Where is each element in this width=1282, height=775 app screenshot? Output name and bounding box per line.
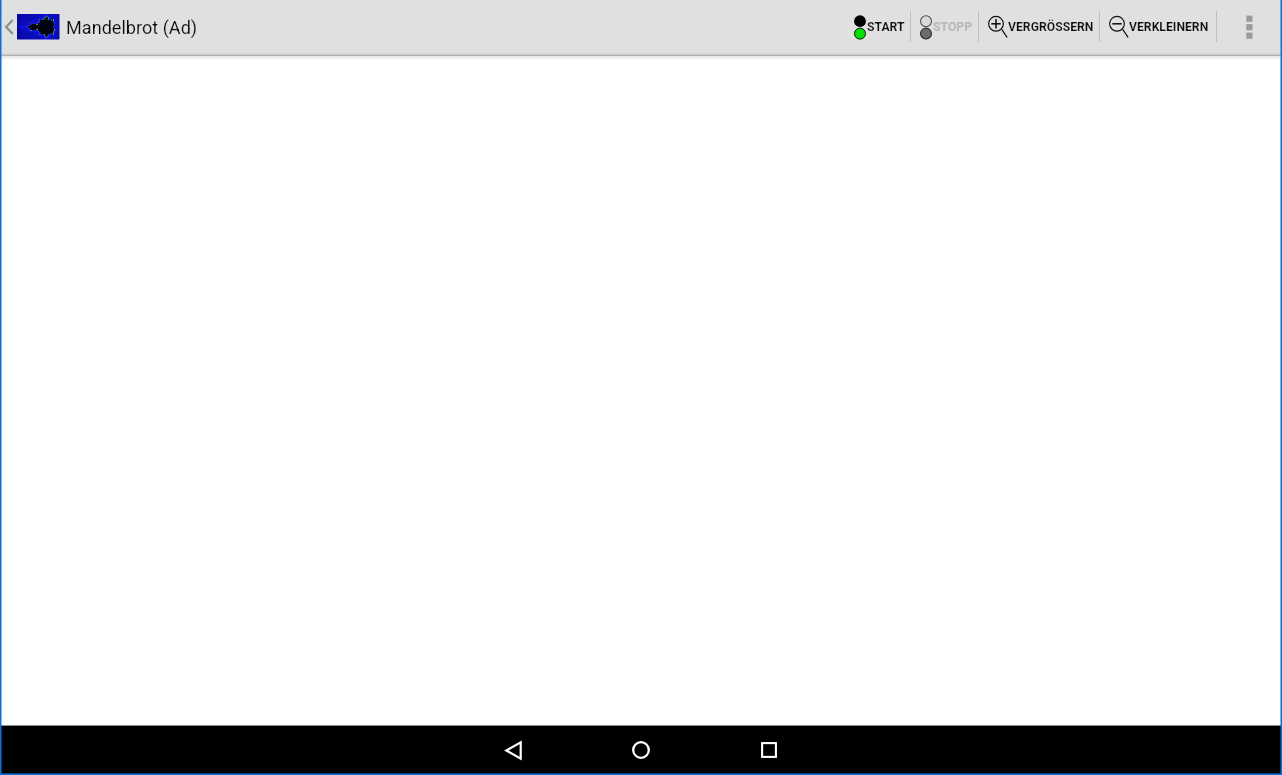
staticText: STOPP bbox=[933, 20, 973, 34]
button[interactable]: More options bbox=[1217, 0, 1281, 54]
button[interactable]: Recents bbox=[745, 726, 793, 774]
button[interactable]: VERGRÖSSERN bbox=[979, 0, 1099, 54]
button[interactable]: STOPP bbox=[911, 0, 978, 54]
button[interactable]: Mandelbrot (Ad) bbox=[0, 0, 198, 54]
button[interactable]: START bbox=[849, 0, 909, 54]
button[interactable]: VERKLEINERN bbox=[1100, 0, 1217, 54]
button[interactable]: Home bbox=[617, 726, 665, 774]
staticText: VERGRÖSSERN bbox=[1008, 20, 1094, 34]
button[interactable]: Back bbox=[489, 726, 537, 774]
staticText: VERKLEINERN bbox=[1129, 20, 1209, 34]
staticText: Mandelbrot (Ad) bbox=[66, 17, 198, 38]
staticText: START bbox=[867, 20, 905, 34]
